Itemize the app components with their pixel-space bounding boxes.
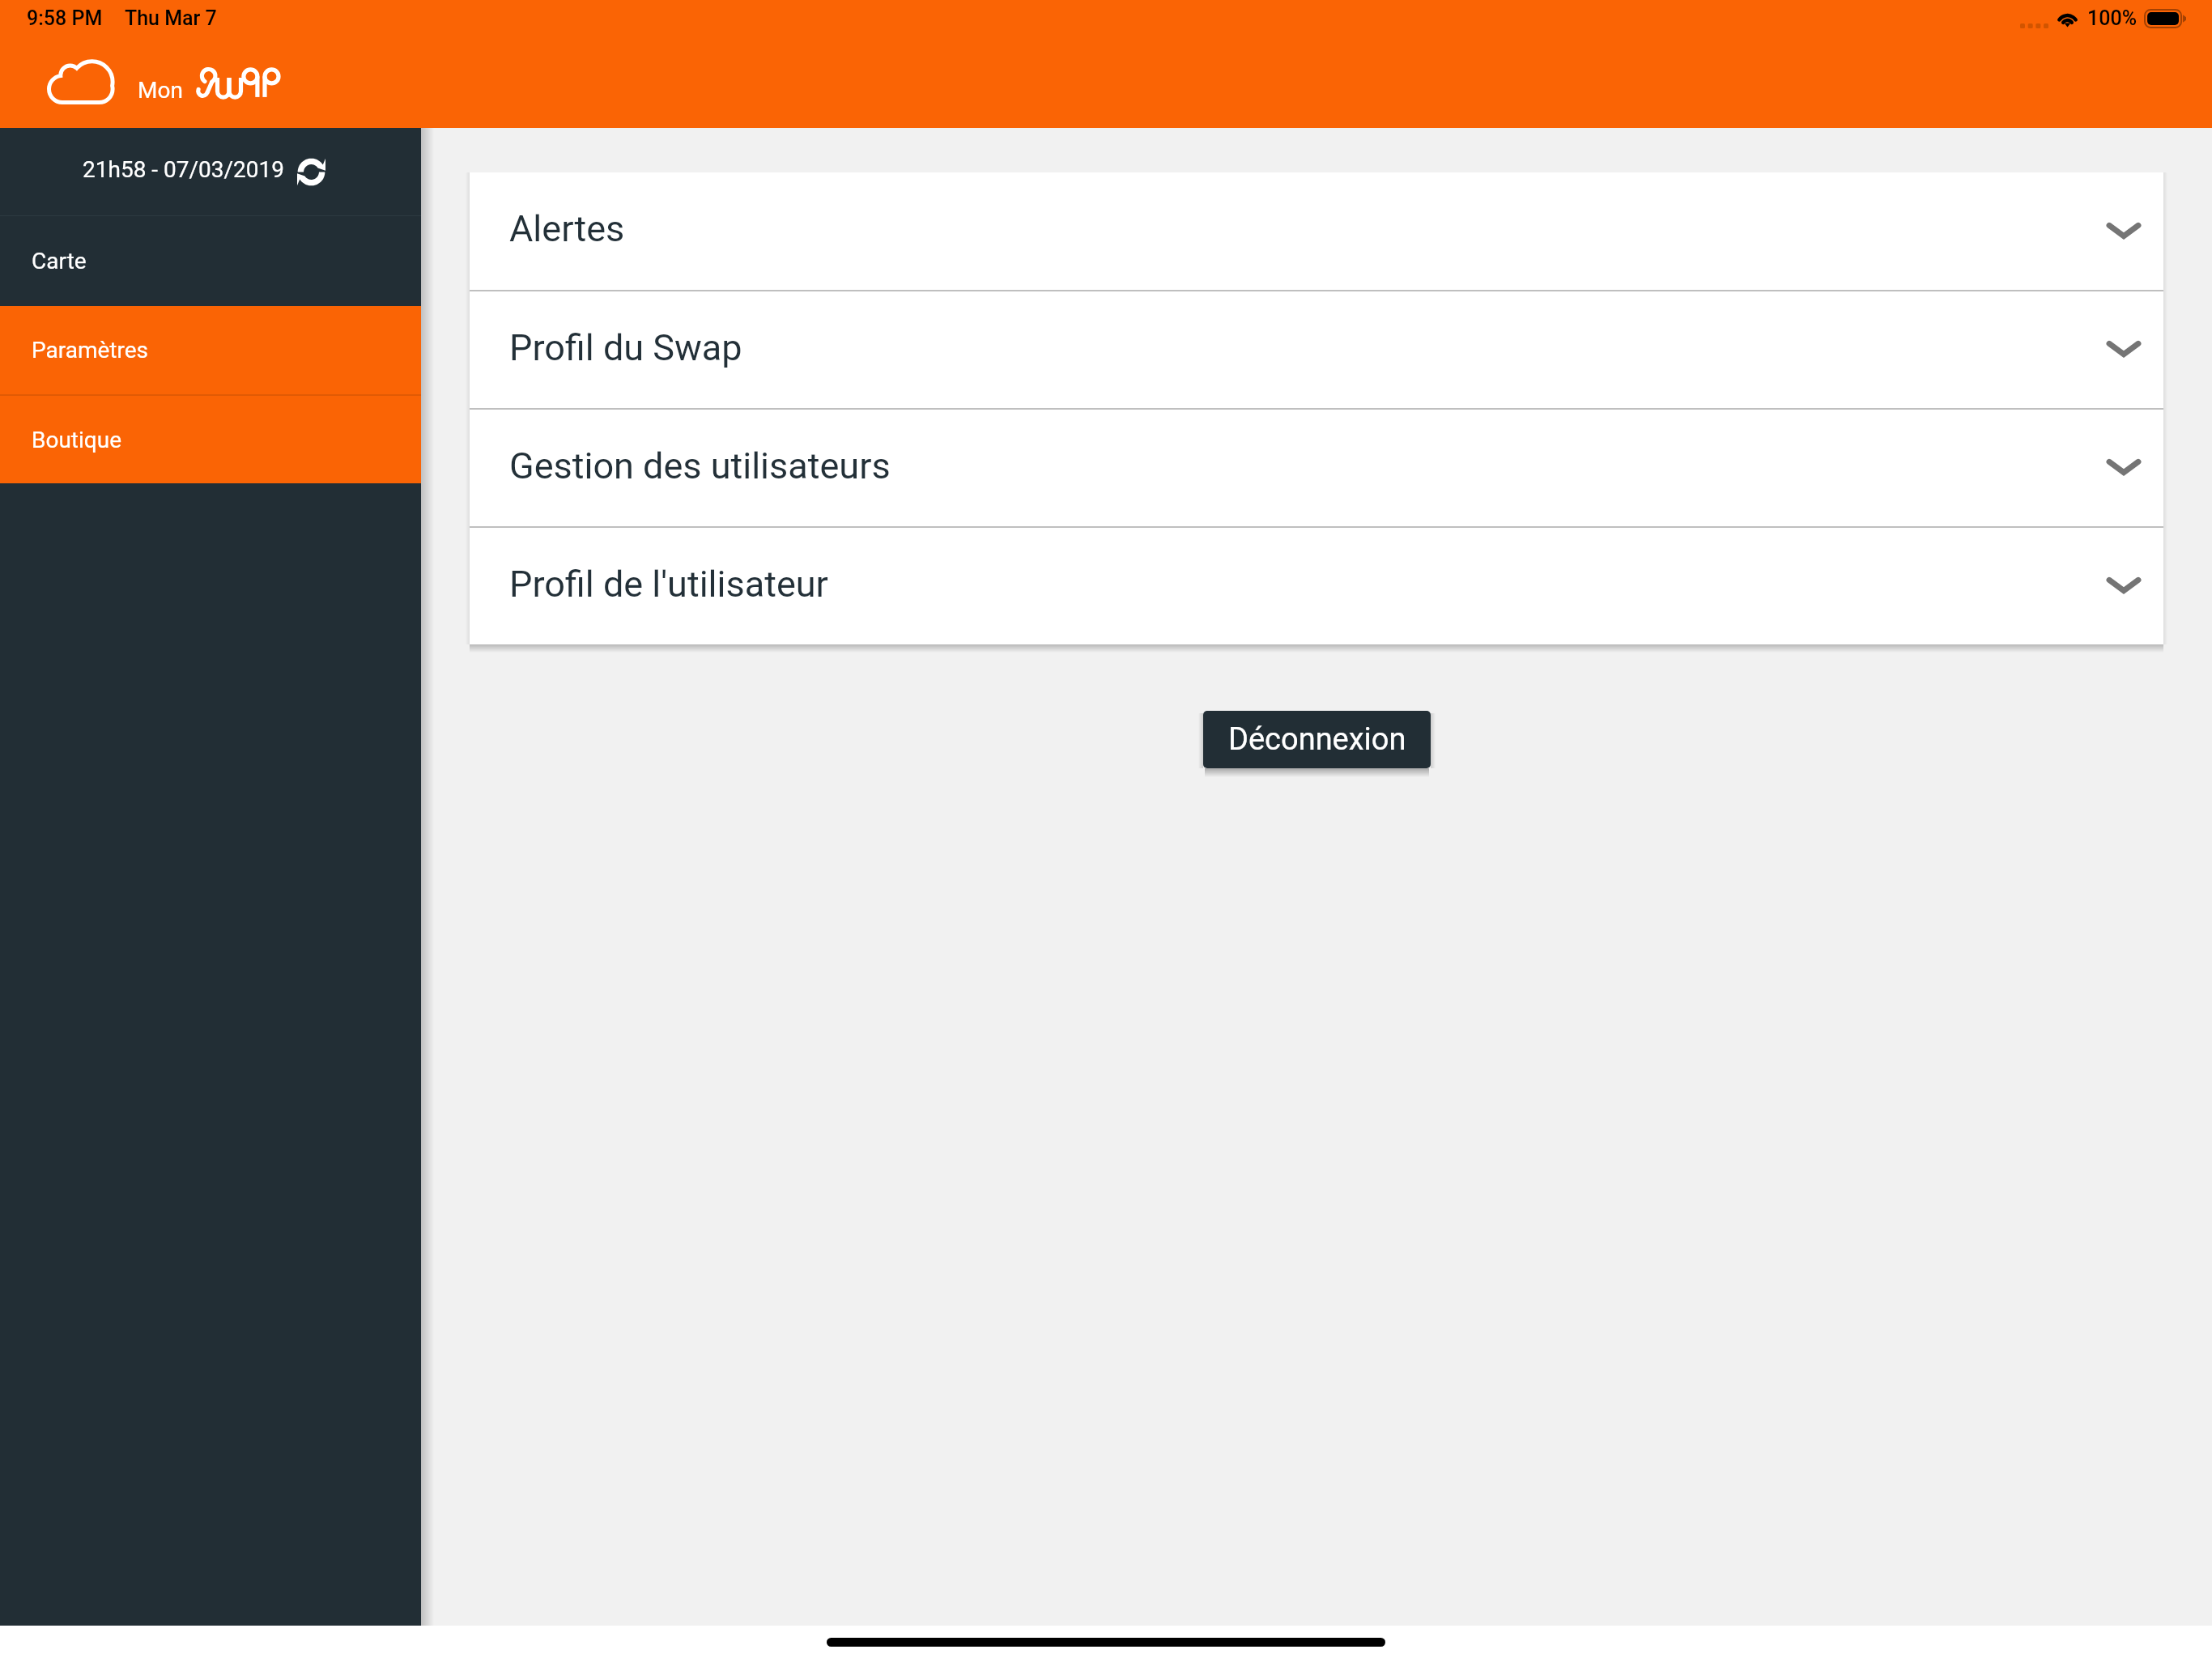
button[interactable]: Déconnexion	[1203, 711, 1431, 768]
staticText: Carte	[32, 248, 87, 274]
button[interactable]: Actualiser	[296, 157, 326, 187]
button[interactable]: Carte	[0, 216, 421, 306]
button[interactable]: Paramètres	[0, 306, 421, 394]
staticText: 9:58 PM	[27, 6, 103, 30]
button[interactable]: Alertes	[470, 172, 2163, 290]
button[interactable]: Profil de l'utilisateur	[470, 528, 2163, 644]
staticText: Paramètres	[32, 337, 149, 363]
staticText: 21h58 - 07/03/2019	[83, 156, 284, 183]
staticText: Boutique	[32, 427, 122, 453]
staticText: Alertes	[509, 207, 625, 250]
staticText: 100%	[2087, 6, 2137, 30]
staticText: Profil de l'utilisateur	[509, 563, 828, 606]
button[interactable]: Boutique	[0, 396, 421, 483]
button[interactable]: Profil du Swap	[470, 291, 2163, 408]
staticText: Thu Mar 7	[125, 6, 217, 30]
button[interactable]: Gestion des utilisateurs	[470, 410, 2163, 526]
staticText: Déconnexion	[1228, 721, 1406, 758]
staticText: Mon	[138, 77, 183, 104]
staticText: Gestion des utilisateurs	[509, 444, 891, 487]
staticText: Profil du Swap	[509, 326, 742, 369]
